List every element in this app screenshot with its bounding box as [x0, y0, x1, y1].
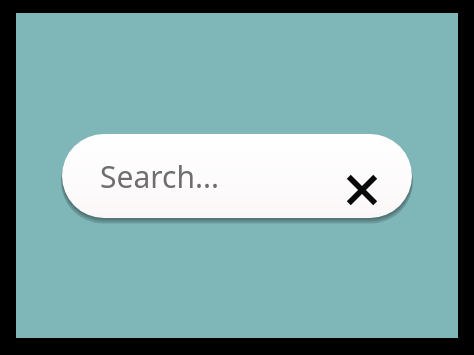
button[interactable]: Clear search: [336, 164, 388, 216]
button[interactable]: Search...: [62, 134, 412, 218]
staticText: Search...: [100, 156, 220, 197]
